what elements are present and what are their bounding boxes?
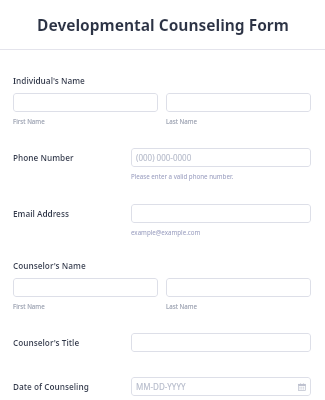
staticText: Email Address <box>13 208 69 219</box>
staticText: (000) 000-0000 <box>136 152 192 163</box>
staticText: First Name <box>13 302 45 310</box>
staticText: example@example.com <box>131 228 201 236</box>
staticText: Counselor's Title <box>13 337 80 348</box>
staticText: Date of Counseling <box>13 381 89 392</box>
staticText: MM-DD-YYYY <box>136 381 186 392</box>
staticText: Phone Number <box>13 152 74 163</box>
staticText: Individual's Name <box>13 75 85 86</box>
staticText: Please enter a valid phone number. <box>131 172 234 180</box>
button[interactable]: Counselor's Name last name <box>166 278 311 297</box>
button[interactable]: Individual's Name last name <box>166 93 311 112</box>
staticText: Last Name <box>166 302 197 310</box>
staticText: Last Name <box>166 117 197 125</box>
button[interactable]: Counselor's Name first name <box>13 278 158 297</box>
button[interactable]: Individual's Name first name <box>13 93 158 112</box>
button[interactable]: Email Address <box>131 204 311 223</box>
button[interactable]: Phone Number <box>131 148 311 167</box>
button[interactable]: Date of Counseling <box>131 377 311 396</box>
staticText: Counselor's Name <box>13 260 86 271</box>
button[interactable]: Counselor's Title <box>131 333 311 352</box>
staticText: First Name <box>13 117 45 125</box>
staticText: Developmental Counseling Form <box>37 14 289 35</box>
